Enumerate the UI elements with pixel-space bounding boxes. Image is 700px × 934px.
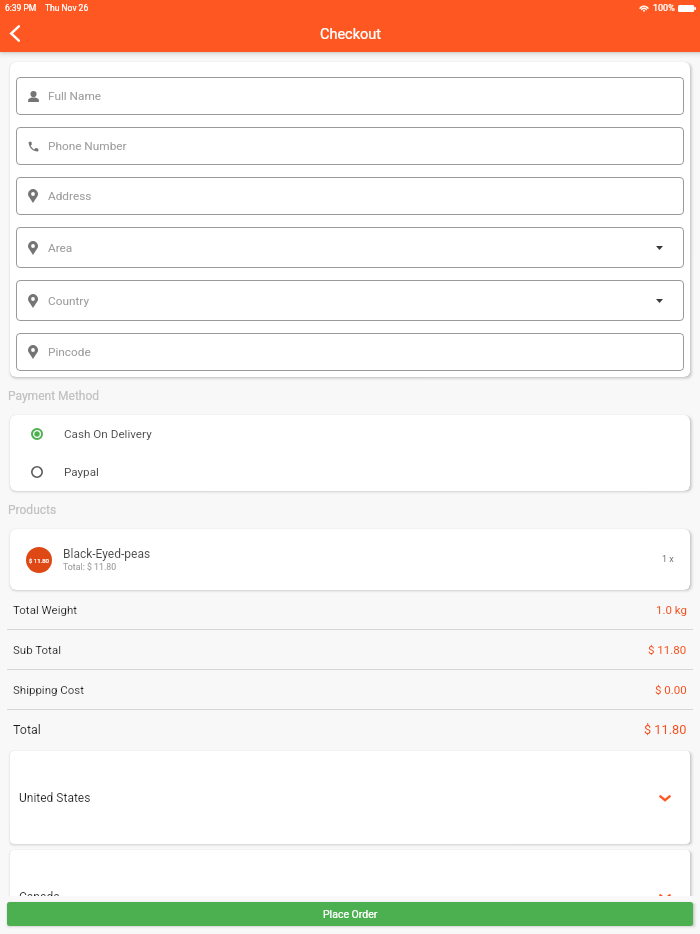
button[interactable]: Phone Number bbox=[16, 127, 684, 165]
staticText: $ 11.80 bbox=[29, 557, 49, 564]
staticText: 100% bbox=[653, 3, 675, 14]
staticText: 1 x bbox=[662, 554, 674, 565]
button[interactable]: Total bbox=[0, 710, 700, 749]
button[interactable]: Area bbox=[16, 227, 684, 268]
staticText: 6:39 PM bbox=[5, 3, 37, 13]
staticText: $ 11.80 bbox=[648, 643, 687, 656]
staticText: Paypal bbox=[64, 465, 99, 479]
staticText: Place Order bbox=[323, 908, 378, 920]
button[interactable]: Cash On Delivery bbox=[10, 415, 690, 453]
button[interactable]: Shipping Cost bbox=[0, 670, 700, 709]
staticText: Total: $ 11.80 bbox=[63, 562, 117, 572]
button[interactable]: Full Name bbox=[16, 77, 684, 115]
button[interactable]: Back bbox=[0, 17, 32, 50]
staticText: Black-Eyed-peas bbox=[63, 547, 151, 561]
staticText: 1.0 kg bbox=[656, 603, 687, 616]
staticText: Cash On Delivery bbox=[64, 427, 152, 441]
button[interactable]: Pincode bbox=[16, 333, 684, 371]
staticText: Address bbox=[48, 189, 92, 203]
staticText: Country bbox=[48, 294, 89, 308]
staticText: Phone Number bbox=[48, 139, 127, 153]
staticText: Thu Nov 26 bbox=[45, 3, 89, 13]
staticText: Area bbox=[48, 241, 73, 255]
other: Expand bbox=[658, 890, 672, 896]
staticText: United States bbox=[19, 791, 91, 805]
button[interactable]: Paypal bbox=[10, 453, 690, 491]
staticText: Sub Total bbox=[13, 643, 61, 656]
button[interactable]: $ 11.80 bbox=[10, 529, 690, 590]
button[interactable]: United States bbox=[10, 751, 690, 844]
staticText: $ 11.80 bbox=[644, 722, 687, 737]
button[interactable]: Canada bbox=[10, 850, 690, 896]
other: Wi-Fi bbox=[639, 4, 649, 12]
button[interactable]: Country bbox=[16, 280, 684, 321]
button[interactable]: Sub Total bbox=[0, 630, 700, 669]
other: Battery bbox=[678, 5, 696, 12]
staticText: Products bbox=[8, 503, 57, 517]
staticText: Pincode bbox=[48, 345, 91, 359]
other: Expand bbox=[658, 791, 672, 805]
button[interactable]: Place Order bbox=[7, 902, 693, 926]
staticText: Shipping Cost bbox=[13, 683, 85, 696]
staticText: Canada bbox=[19, 890, 60, 896]
staticText: Full Name bbox=[48, 89, 101, 103]
staticText: Checkout bbox=[320, 26, 382, 43]
other: Open Area list bbox=[656, 246, 663, 250]
button[interactable]: Total Weight bbox=[0, 590, 700, 629]
staticText: $ 0.00 bbox=[655, 683, 687, 696]
other: Open Country list bbox=[656, 299, 663, 303]
staticText: Total Weight bbox=[13, 603, 78, 616]
staticText: Total bbox=[13, 722, 41, 737]
button[interactable]: Address bbox=[16, 177, 684, 215]
staticText: Payment Method bbox=[8, 389, 100, 403]
